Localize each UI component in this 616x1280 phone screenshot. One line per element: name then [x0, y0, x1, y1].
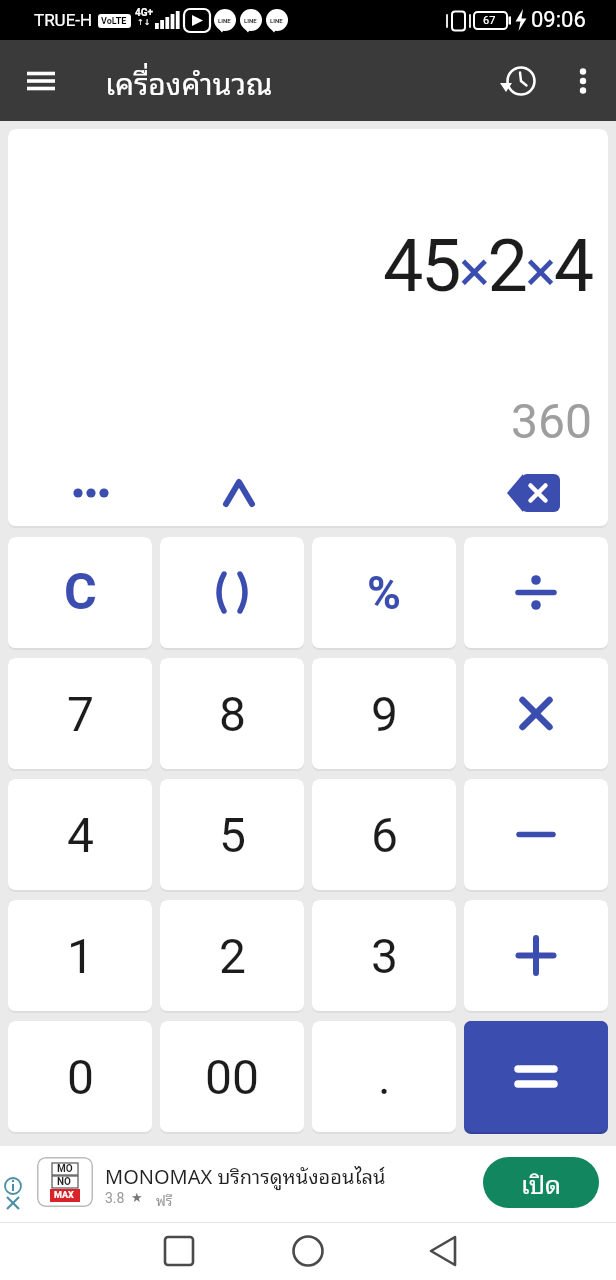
- staticText: 1: [67, 928, 94, 984]
- button[interactable]: 8: [160, 658, 304, 771]
- staticText: 8: [219, 686, 246, 742]
- staticText: C: [64, 563, 97, 622]
- staticText: TRUE-H: [34, 10, 93, 30]
- button[interactable]: [211, 465, 267, 521]
- staticText: MAX: [54, 1190, 74, 1201]
- button[interactable]: 5: [160, 779, 304, 892]
- button[interactable]: [464, 1021, 608, 1134]
- staticText: 7: [67, 686, 94, 742]
- staticText: %: [367, 566, 401, 620]
- staticText: 360: [511, 393, 592, 449]
- staticText: VoLTE: [101, 16, 127, 27]
- staticText: ↑↓: [137, 18, 151, 27]
- button[interactable]: [507, 465, 569, 521]
- button[interactable]: 2: [160, 900, 304, 1013]
- button[interactable]: [464, 537, 608, 650]
- button[interactable]: MO: [37, 1157, 93, 1207]
- staticText: 4G+: [135, 7, 154, 19]
- button[interactable]: [17, 57, 65, 105]
- staticText: 67: [483, 14, 496, 27]
- staticText: 00: [205, 1049, 259, 1105]
- button[interactable]: 1: [8, 900, 152, 1013]
- staticText: LINE: [218, 17, 231, 24]
- button[interactable]: 3: [312, 900, 456, 1013]
- button[interactable]: 4: [8, 779, 152, 892]
- staticText: 6: [371, 807, 398, 863]
- button[interactable]: [160, 537, 304, 650]
- staticText: 9: [371, 686, 398, 742]
- button[interactable]: C: [8, 537, 152, 650]
- staticText: 4: [67, 807, 94, 863]
- staticText: เปิด: [521, 1163, 562, 1203]
- staticText: 3.8: [105, 1190, 125, 1206]
- staticText: 3: [371, 928, 398, 984]
- staticText: .: [378, 1049, 391, 1105]
- button[interactable]: [464, 658, 608, 771]
- button[interactable]: [63, 465, 119, 521]
- staticText: MONOMAX บริการดูหนังออนไลน์: [105, 1159, 386, 1191]
- staticText: ฟรี: [156, 1188, 173, 1210]
- staticText: 5: [219, 807, 246, 863]
- button[interactable]: %: [312, 537, 456, 650]
- button[interactable]: 6: [312, 779, 456, 892]
- button[interactable]: [464, 779, 608, 892]
- button[interactable]: 7: [8, 658, 152, 771]
- staticText: 0: [67, 1049, 94, 1105]
- staticText: เครื่องคำนวณ: [105, 57, 273, 105]
- button[interactable]: [420, 1227, 468, 1275]
- staticText: LINE: [270, 17, 283, 24]
- staticText: NO: [57, 1176, 71, 1188]
- button[interactable]: เปิด: [483, 1157, 599, 1208]
- button[interactable]: [497, 57, 545, 105]
- button[interactable]: 0: [8, 1021, 152, 1134]
- button[interactable]: [155, 1227, 203, 1275]
- button[interactable]: 00: [160, 1021, 304, 1134]
- button[interactable]: .: [312, 1021, 456, 1134]
- button[interactable]: 9: [312, 658, 456, 771]
- staticText: 2: [219, 928, 246, 984]
- staticText: ★: [131, 1190, 143, 1205]
- staticText: 45×2×4: [383, 224, 592, 308]
- staticText: MO: [57, 1163, 73, 1175]
- button[interactable]: [284, 1227, 332, 1275]
- staticText: LINE: [244, 17, 257, 24]
- button[interactable]: [559, 57, 607, 105]
- button[interactable]: [464, 900, 608, 1013]
- staticText: 09:06: [531, 7, 586, 33]
